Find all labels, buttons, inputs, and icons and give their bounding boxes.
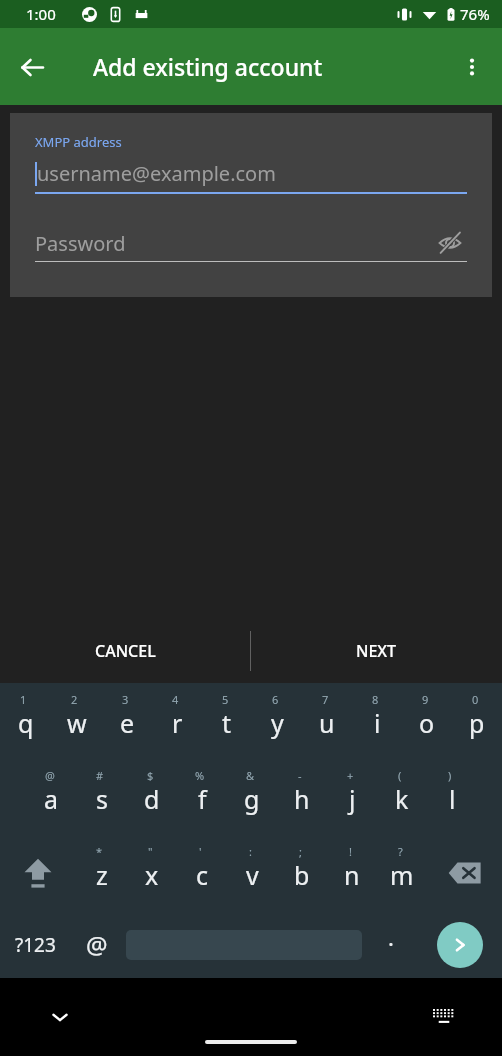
button[interactable]: * (76, 835, 127, 911)
staticText: Add existing account (93, 51, 323, 82)
staticText: $ (147, 768, 154, 783)
button[interactable]: Shift (0, 835, 76, 911)
staticText: e (120, 706, 135, 740)
staticText: l (449, 782, 456, 816)
button[interactable]: More options (448, 43, 496, 91)
staticText: a (44, 782, 59, 816)
button[interactable]: ' (177, 835, 227, 911)
button[interactable]: ( (377, 759, 427, 835)
button[interactable]: 6 (252, 683, 302, 759)
staticText: " (148, 844, 153, 859)
staticText: 76% (460, 4, 490, 24)
button[interactable]: Switch keyboard (424, 997, 464, 1037)
staticText: Password (35, 230, 126, 257)
button[interactable]: 1 (0, 683, 51, 759)
button[interactable]: CANCEL (0, 619, 250, 683)
button[interactable]: ; (277, 835, 327, 911)
button[interactable]: " (127, 835, 177, 911)
staticText: : (249, 844, 252, 859)
button[interactable]: NEXT (251, 619, 502, 683)
button[interactable]: ! (327, 835, 377, 911)
button[interactable]: 0 (452, 683, 502, 759)
button[interactable]: 3 (102, 683, 152, 759)
staticText: r (172, 706, 183, 740)
staticText: q (18, 706, 34, 740)
staticText: 6 (272, 692, 279, 707)
staticText: v (246, 858, 259, 892)
staticText: ? (398, 844, 403, 859)
staticText: + (347, 768, 354, 783)
staticText: 1 (20, 692, 27, 707)
button[interactable]: Home (205, 1040, 297, 1044)
staticText: g (244, 782, 260, 816)
button[interactable]: Back (8, 43, 56, 91)
staticText: i (374, 706, 381, 740)
staticText: @ (45, 768, 55, 783)
staticText: ; (299, 844, 302, 859)
button[interactable]: @ (26, 759, 77, 835)
button[interactable]: Enter (437, 922, 483, 968)
staticText: k (395, 782, 409, 816)
staticText: ( (398, 768, 402, 783)
staticText: . (388, 922, 394, 952)
staticText: b (294, 858, 310, 892)
staticText: - (298, 768, 302, 783)
staticText: x (145, 858, 159, 892)
staticText: z (96, 858, 108, 892)
staticText: 0 (472, 692, 479, 707)
staticText: m (390, 858, 414, 892)
staticText: 4 (172, 692, 179, 707)
button[interactable]: ) (427, 759, 477, 835)
staticText: 7 (322, 692, 329, 707)
staticText: p (469, 706, 485, 740)
staticText: # (96, 768, 104, 783)
staticText: ) (448, 768, 452, 783)
button[interactable]: + (327, 759, 377, 835)
staticText: ! (349, 844, 352, 859)
button[interactable]: $ (127, 759, 177, 835)
staticText: y (271, 706, 284, 740)
button[interactable]: 7 (302, 683, 352, 759)
staticText: % (195, 768, 205, 783)
staticText: 5 (222, 692, 229, 707)
staticText: u (319, 706, 335, 740)
staticText: o (419, 706, 435, 740)
button[interactable]: Backspace (427, 835, 502, 911)
staticText: j (349, 782, 356, 816)
staticText: @ (86, 928, 108, 961)
staticText: NEXT (356, 640, 397, 662)
staticText: t (222, 706, 232, 740)
staticText: 2 (71, 692, 78, 707)
button[interactable]: : (227, 835, 277, 911)
staticText: 9 (422, 692, 429, 707)
button[interactable]: @ (71, 911, 123, 978)
staticText: 3 (122, 692, 129, 707)
button[interactable]: 5 (202, 683, 252, 759)
button[interactable]: 4 (152, 683, 202, 759)
button[interactable]: - (277, 759, 327, 835)
button[interactable]: 8 (352, 683, 402, 759)
staticText: ' (199, 844, 202, 859)
button[interactable]: ?123 (0, 911, 71, 978)
staticText: CANCEL (95, 640, 156, 662)
button[interactable]: 9 (402, 683, 452, 759)
button[interactable]: ? (377, 835, 427, 911)
button[interactable]: Show password (433, 228, 467, 258)
staticText: & (246, 768, 255, 783)
button[interactable]: 2 (51, 683, 102, 759)
staticText: username@example.com (37, 160, 276, 187)
staticText: c (196, 858, 209, 892)
staticText: 1:00 (26, 4, 56, 24)
staticText: XMPP address (35, 133, 122, 151)
staticText: s (96, 782, 108, 816)
button[interactable]: % (177, 759, 227, 835)
staticText: ?123 (15, 932, 56, 958)
button[interactable]: # (77, 759, 127, 835)
button[interactable]: . (365, 911, 417, 978)
button[interactable]: & (227, 759, 277, 835)
staticText: n (344, 858, 360, 892)
staticText: d (144, 782, 160, 816)
staticText: w (67, 706, 87, 740)
button[interactable]: Hide keyboard (38, 995, 82, 1039)
